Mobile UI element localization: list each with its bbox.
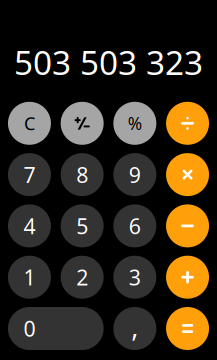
button[interactable]: ,: [113, 307, 156, 350]
staticText: 3: [129, 263, 141, 292]
staticText: ,: [131, 308, 138, 345]
button[interactable]: Plus minus: [61, 102, 104, 145]
button[interactable]: Divide: [166, 102, 209, 145]
button[interactable]: Subtract: [166, 204, 209, 247]
button[interactable]: 4: [8, 204, 51, 247]
button[interactable]: 3: [113, 256, 156, 299]
button[interactable]: 9: [113, 153, 156, 196]
staticText: 1: [23, 263, 35, 292]
button[interactable]: Add: [166, 256, 209, 299]
button[interactable]: 1: [8, 256, 51, 299]
button[interactable]: 2: [61, 256, 104, 299]
button[interactable]: 7: [8, 153, 51, 196]
button[interactable]: 6: [113, 204, 156, 247]
button[interactable]: %: [113, 102, 156, 145]
staticText: 5: [76, 211, 88, 240]
staticText: 0: [23, 314, 35, 343]
button[interactable]: 0: [8, 307, 104, 350]
staticText: 2: [76, 263, 88, 292]
staticText: 4: [23, 211, 35, 240]
staticText: 9: [129, 160, 141, 189]
button[interactable]: Multiply: [166, 153, 209, 196]
staticText: 6: [129, 211, 141, 240]
staticText: 8: [76, 160, 88, 189]
button[interactable]: Equals: [166, 307, 209, 350]
staticText: 503 503 323: [14, 39, 203, 85]
button[interactable]: 8: [61, 153, 104, 196]
staticText: %: [128, 111, 142, 135]
staticText: 7: [23, 160, 35, 189]
staticText: C: [24, 111, 35, 135]
button[interactable]: C: [8, 102, 51, 145]
button[interactable]: 5: [61, 204, 104, 247]
